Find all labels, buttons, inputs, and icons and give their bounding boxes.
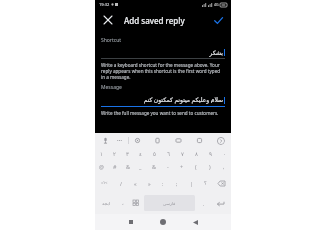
button[interactable]: ٨ [189,147,203,160]
button[interactable]: Backspace [212,173,231,193]
staticText: - [167,163,169,170]
staticText: | [190,180,193,187]
button[interactable]: # [108,160,121,173]
button[interactable]: Close [100,12,116,28]
button[interactable]: / [114,173,128,193]
staticText: « [134,180,137,187]
staticText: ; [176,180,178,187]
staticText: ٣ [126,151,129,157]
staticText: ٢ [113,151,116,157]
button[interactable]: Save [210,12,226,28]
staticText: + [180,163,184,170]
staticText: Write a keyboard shortcut for the messag… [101,62,225,80]
button[interactable]: @ [95,160,108,173]
button[interactable]: Home [156,215,170,229]
staticText: @ [99,163,104,170]
staticText: فارسی [163,201,176,206]
button[interactable]: ) [203,160,217,173]
button[interactable]: ٤ [134,147,147,160]
button[interactable]: Recents [124,215,138,229]
staticText: & [152,163,156,170]
staticText: Add saved reply [124,15,185,26]
button[interactable]: ابجد [95,193,116,213]
button[interactable]: Settings [133,136,142,145]
button[interactable]: ٧ [175,147,189,160]
button[interactable]: « [128,173,142,193]
button[interactable]: Clipboard [153,136,162,145]
staticText: =\< [101,180,108,186]
button[interactable]: Back [188,215,202,229]
staticText: ٧ [181,151,184,157]
staticText: » [148,180,151,187]
staticText: ٦ [167,151,170,157]
staticText: ) [209,163,211,170]
staticText: / [120,180,122,187]
button[interactable]: ٢ [108,147,121,160]
button[interactable]: : [156,173,170,193]
staticText: & [126,163,130,170]
button[interactable]: Translate [174,136,183,145]
button[interactable]: | [184,173,198,193]
button[interactable]: Sticker [195,136,204,145]
button[interactable]: Expand [216,136,225,145]
staticText: ١ [100,151,103,157]
staticText: ٠ [223,151,226,157]
button[interactable]: فارسی [144,195,195,211]
button[interactable]: » [142,173,156,193]
button[interactable]: Emoji keyboard [129,193,142,213]
button[interactable]: ١ [95,147,108,160]
staticText: ( [195,163,197,170]
button[interactable]: & [121,160,134,173]
button[interactable]: + [175,160,189,173]
staticText: _ [139,163,142,170]
staticText: ٨ [195,151,198,157]
staticText: سلام وعليكم ميتونم كمكتون كنم [143,96,223,104]
button[interactable]: ; [170,173,184,193]
staticText: ٤ [139,151,142,157]
staticText: # [113,163,117,170]
button[interactable]: , [217,160,231,173]
button[interactable]: =\< [95,173,114,193]
staticText: ٥ [153,151,156,157]
staticText: , [223,163,225,170]
button[interactable]: Enter [210,193,231,213]
button[interactable]: & [147,160,161,173]
staticText: ٩ [209,151,212,157]
button[interactable]: ٣ [121,147,134,160]
staticText: . [203,200,205,207]
staticText: : [162,180,164,187]
staticText: Shortcut [101,37,122,44]
button[interactable]: ( [189,160,203,173]
staticText: 19:32 [99,2,110,7]
staticText: Message [101,84,122,91]
button[interactable]: ٦ [161,147,175,160]
button[interactable]: ٩ [203,147,217,160]
staticText: ، [122,200,124,206]
staticText: Write the full message you want to send … [101,110,225,116]
button[interactable]: More [115,136,124,145]
staticText: ابجد [102,201,110,206]
staticText: 4G [214,2,219,7]
button[interactable]: ؟ [198,173,212,193]
staticText: بشكر [209,49,223,56]
staticText: ؟ [204,180,207,186]
button[interactable]: Voice input [101,136,110,145]
button[interactable]: ٥ [147,147,161,160]
button[interactable]: _ [134,160,147,173]
